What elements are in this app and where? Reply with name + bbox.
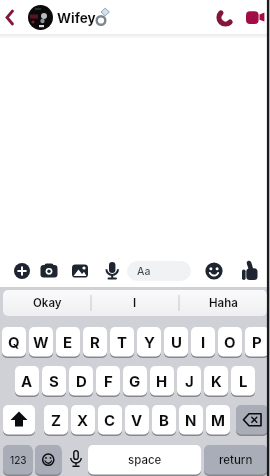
button[interactable]: [3, 405, 35, 436]
button[interactable]: W: [29, 327, 53, 358]
staticText: Okay: [33, 296, 62, 310]
button[interactable]: H: [150, 366, 174, 397]
button[interactable]: [2, 5, 20, 30]
button[interactable]: [39, 261, 59, 281]
button[interactable]: Haha: [179, 290, 267, 316]
staticText: N: [185, 411, 197, 429]
staticText: V: [131, 411, 143, 429]
staticText: R: [90, 333, 100, 351]
button[interactable]: [28, 5, 53, 30]
staticText: J: [185, 372, 194, 390]
staticText: Q: [8, 333, 20, 351]
button[interactable]: C: [98, 405, 122, 436]
button[interactable]: Z: [44, 405, 68, 436]
button[interactable]: [242, 5, 268, 31]
staticText: E: [63, 333, 73, 351]
button[interactable]: Y: [137, 327, 161, 358]
button[interactable]: [240, 260, 262, 282]
staticText: return: [219, 453, 253, 467]
button[interactable]: Okay: [3, 290, 91, 316]
staticText: Z: [51, 411, 61, 429]
button[interactable]: [213, 5, 238, 30]
staticText: X: [77, 411, 89, 429]
button[interactable]: L: [231, 366, 255, 397]
button[interactable]: B: [152, 405, 176, 436]
staticText: H: [156, 372, 168, 390]
staticText: I: [133, 296, 137, 310]
staticText: U: [171, 333, 182, 351]
button[interactable]: D: [69, 366, 93, 397]
button[interactable]: E: [56, 327, 80, 358]
button[interactable]: [35, 445, 62, 476]
staticText: Wifey: [57, 10, 96, 26]
button[interactable]: S: [42, 366, 66, 397]
staticText: T: [117, 333, 128, 351]
button[interactable]: space: [88, 445, 201, 476]
button[interactable]: P: [245, 327, 269, 358]
button[interactable]: I: [191, 327, 215, 358]
button[interactable]: J: [177, 366, 201, 397]
button[interactable]: [236, 405, 268, 436]
button[interactable]: V: [125, 405, 149, 436]
button[interactable]: return: [204, 445, 268, 476]
button[interactable]: N: [179, 405, 203, 436]
staticText: K: [211, 372, 222, 390]
staticText: F: [104, 372, 113, 390]
staticText: Y: [144, 333, 155, 351]
button[interactable]: T: [110, 327, 134, 358]
staticText: 123: [10, 454, 27, 466]
button[interactable]: Q: [2, 327, 26, 358]
button[interactable]: G: [123, 366, 147, 397]
button[interactable]: M: [206, 405, 230, 436]
staticText: space: [128, 453, 162, 467]
button[interactable]: I: [91, 290, 179, 316]
button[interactable]: U: [164, 327, 188, 358]
button[interactable]: Aa: [127, 261, 191, 281]
staticText: W: [33, 333, 49, 351]
button[interactable]: O: [218, 327, 242, 358]
staticText: D: [76, 372, 87, 390]
staticText: B: [159, 411, 169, 429]
staticText: O: [224, 333, 236, 351]
staticText: Aa: [137, 265, 151, 278]
staticText: L: [239, 372, 248, 390]
staticText: I: [201, 333, 206, 351]
staticText: S: [49, 372, 59, 390]
button[interactable]: [12, 261, 32, 281]
button[interactable]: [204, 261, 224, 281]
staticText: M: [211, 411, 225, 429]
button[interactable]: F: [96, 366, 120, 397]
staticText: Haha: [209, 296, 238, 310]
button[interactable]: [102, 260, 122, 282]
staticText: C: [104, 411, 116, 429]
button[interactable]: [70, 261, 90, 281]
staticText: P: [252, 333, 262, 351]
button[interactable]: 123: [3, 445, 33, 476]
button[interactable]: X: [71, 405, 95, 436]
button[interactable]: A: [15, 366, 39, 397]
staticText: A: [21, 372, 33, 390]
button[interactable]: R: [83, 327, 107, 358]
staticText: G: [129, 372, 141, 390]
button[interactable]: K: [204, 366, 228, 397]
button[interactable]: [66, 445, 86, 475]
